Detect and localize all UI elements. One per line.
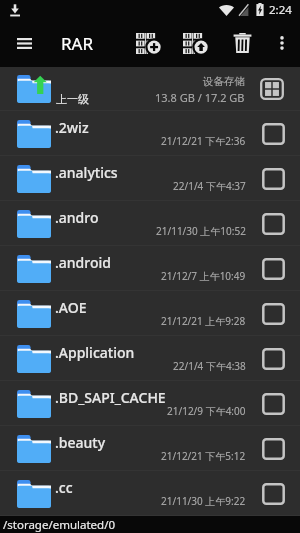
staticText: 2:24	[269, 2, 292, 18]
button[interactable]: Select .AOE	[260, 301, 286, 327]
staticText: 21/12/21 上午9:28	[161, 314, 246, 328]
staticText: 22/1/4 下午4:37	[173, 179, 246, 193]
staticText: .2wiz	[55, 118, 89, 137]
button[interactable]: Navigation menu	[6, 19, 42, 67]
staticText: 21/12/9 下午4:00	[167, 404, 246, 418]
button[interactable]: Extract archive	[177, 19, 214, 67]
staticText: .analytics	[55, 163, 118, 182]
button[interactable]: Select .andro	[260, 211, 286, 237]
button[interactable]: Select .beauty	[260, 436, 286, 462]
staticText: 21/12/21 下午2:36	[161, 134, 246, 148]
staticText: 13.8 GB / 17.2 GB	[155, 90, 245, 105]
button[interactable]: .cc	[0, 471, 300, 516]
button[interactable]: Select .analytics	[260, 166, 286, 192]
button[interactable]: 上一级	[0, 67, 300, 111]
staticText: .beauty	[55, 433, 106, 452]
staticText: 上一级	[56, 92, 89, 106]
staticText: /storage/emulated/0	[3, 517, 116, 533]
button[interactable]: More options	[269, 19, 295, 67]
staticText: .BD_SAPI_CACHE	[55, 388, 166, 407]
button[interactable]: Select .cc	[260, 481, 286, 507]
button[interactable]: .AOE	[0, 291, 300, 336]
staticText: 设备存储	[203, 75, 245, 88]
button[interactable]: .Application	[0, 336, 300, 381]
button[interactable]: Select .2wiz	[260, 121, 286, 147]
button[interactable]: .android	[0, 246, 300, 291]
button[interactable]: Add to archive	[130, 19, 167, 67]
button[interactable]: .2wiz	[0, 111, 300, 156]
button[interactable]: Delete	[225, 19, 260, 67]
staticText: 21/12/7 上午10:49	[161, 269, 246, 283]
staticText: 21/11/30 上午10:52	[156, 224, 246, 238]
staticText: .Application	[55, 343, 135, 362]
button[interactable]: Select .android	[260, 256, 286, 282]
button[interactable]: Select .BD_SAPI_CACHE	[260, 391, 286, 417]
staticText: .android	[55, 253, 111, 272]
staticText: .AOE	[55, 298, 87, 317]
staticText: 22/1/4 下午4:38	[173, 359, 246, 373]
staticText: .cc	[55, 478, 73, 497]
button[interactable]: Grid view	[259, 76, 285, 102]
button[interactable]: .beauty	[0, 426, 300, 471]
button[interactable]: Select .Application	[260, 346, 286, 372]
staticText: 21/11/30 上午9:22	[161, 494, 246, 508]
staticText: RAR	[61, 32, 94, 55]
staticText: 21/12/21 下午5:12	[161, 449, 246, 463]
button[interactable]: .analytics	[0, 156, 300, 201]
button[interactable]: .BD_SAPI_CACHE	[0, 381, 300, 426]
staticText: .andro	[55, 208, 99, 227]
button[interactable]: .andro	[0, 201, 300, 246]
